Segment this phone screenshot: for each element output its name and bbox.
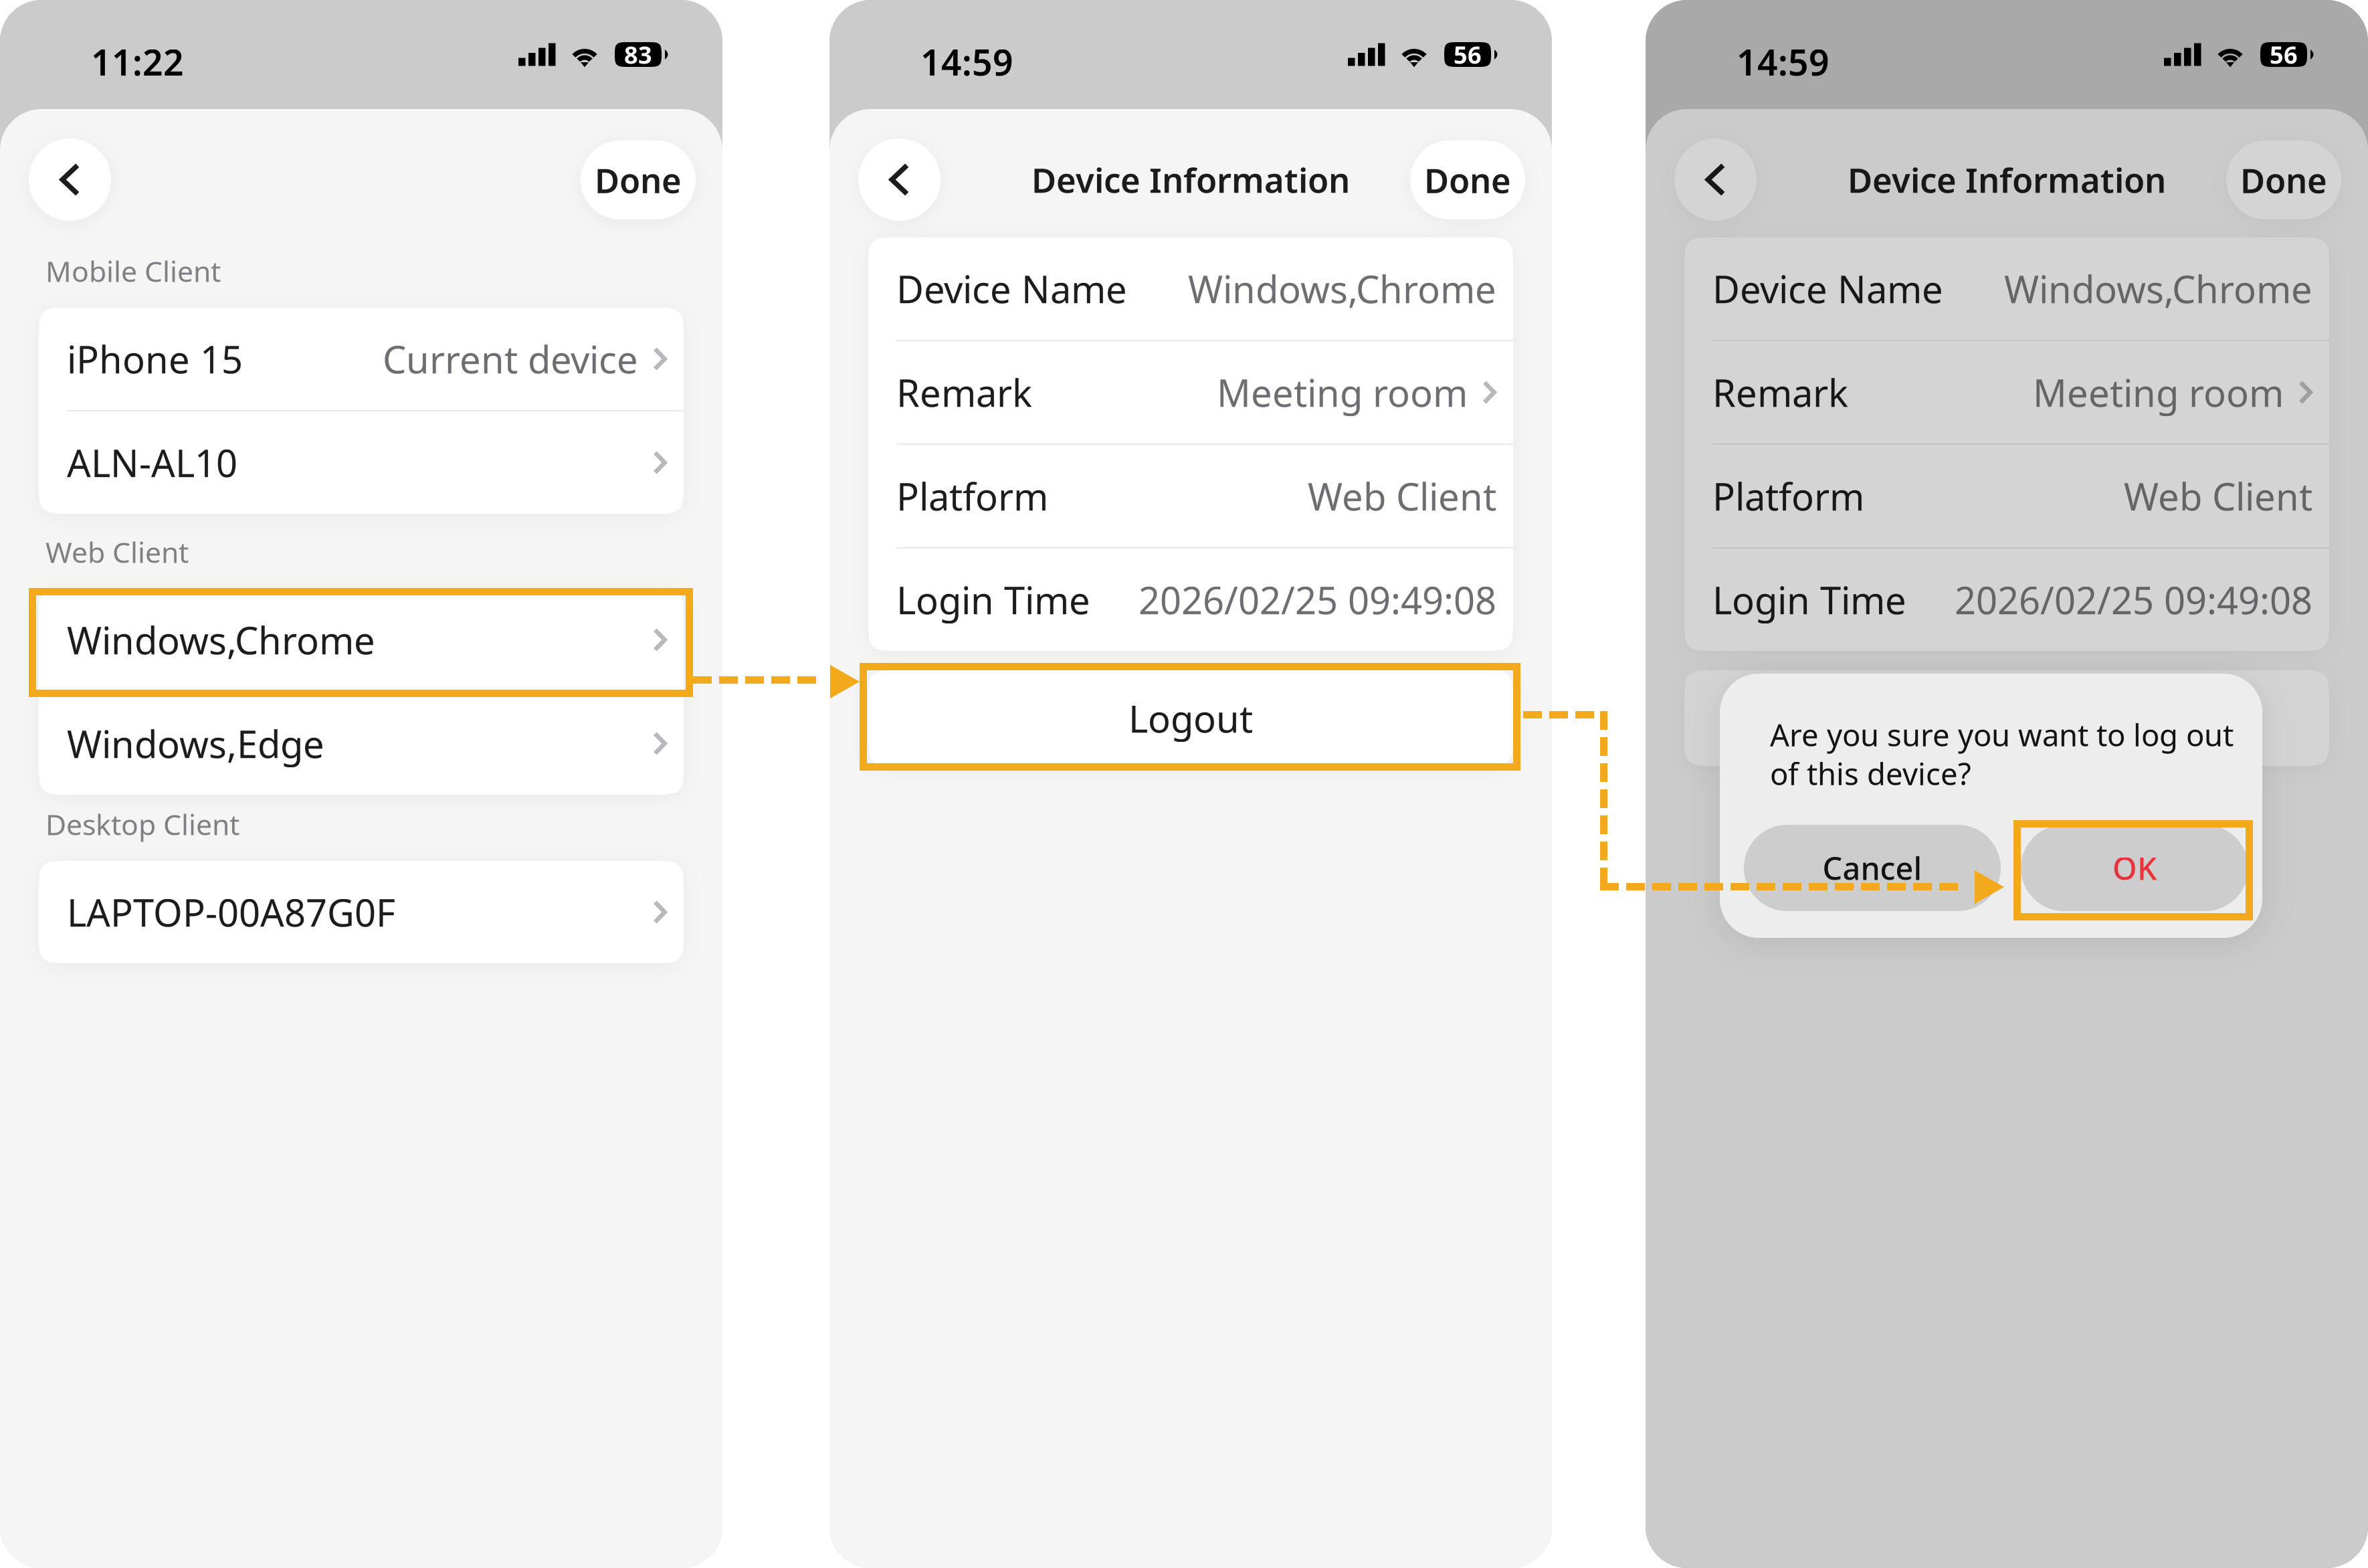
staticText: Platform xyxy=(896,471,1048,521)
staticText: LAPTOP-00A87G0F xyxy=(67,887,395,937)
button[interactable]: Device Name xyxy=(868,237,1513,340)
staticText: Logout xyxy=(1945,693,2069,743)
staticText: 11:22 xyxy=(91,38,184,85)
staticText: Web Client xyxy=(45,533,189,571)
staticText: of this device? xyxy=(1770,753,1971,793)
staticText: 2026/02/25 09:49:08 xyxy=(1139,575,1496,625)
staticText: Remark xyxy=(1712,367,1848,417)
button[interactable]: iPhone 15 xyxy=(39,308,684,410)
staticText: 14:59 xyxy=(920,38,1013,85)
staticText: Platform xyxy=(1712,471,1864,521)
staticText: Web Client xyxy=(1308,471,1496,521)
staticText: Login Time xyxy=(1712,575,1906,625)
button[interactable]: Windows,Chrome xyxy=(39,589,684,691)
button[interactable]: Device Name xyxy=(1684,237,2329,340)
button[interactable]: LAPTOP-00A87G0F xyxy=(39,861,684,963)
staticText: Current device xyxy=(383,334,638,384)
staticText: Meeting room xyxy=(1217,367,1468,417)
button[interactable]: Back xyxy=(1674,138,1757,221)
staticText: iPhone 15 xyxy=(67,334,243,384)
button[interactable]: Platform xyxy=(868,445,1513,547)
staticText: Logout xyxy=(1128,693,1253,743)
button[interactable]: ALN-AL10 xyxy=(39,411,684,514)
staticText: Device Information xyxy=(1031,157,1350,202)
button[interactable]: Platform xyxy=(1684,445,2329,547)
staticText: Done xyxy=(595,157,682,202)
staticText: Device Information xyxy=(1848,157,2166,202)
staticText: Mobile Client xyxy=(45,252,221,290)
staticText: Remark xyxy=(896,367,1032,417)
button[interactable]: Back xyxy=(29,138,111,221)
staticText: 56 xyxy=(2270,39,2298,71)
button[interactable]: Back xyxy=(858,138,941,221)
staticText: ALN-AL10 xyxy=(67,438,237,487)
staticText: Done xyxy=(2240,157,2327,202)
button[interactable]: Done xyxy=(2226,140,2341,219)
button[interactable]: Remark xyxy=(1684,341,2329,444)
button[interactable]: Done xyxy=(1410,140,1525,219)
staticText: Windows,Chrome xyxy=(67,615,375,665)
staticText: Login Time xyxy=(896,575,1090,625)
staticText: OK xyxy=(2112,847,2157,889)
staticText: Windows,Chrome xyxy=(2004,264,2312,314)
staticText: 56 xyxy=(1454,39,1482,71)
button[interactable]: Logout xyxy=(868,670,1513,766)
staticText: 83 xyxy=(624,39,652,71)
staticText: Device Name xyxy=(1712,264,1943,314)
staticText: Done xyxy=(1424,157,1511,202)
staticText: Windows,Chrome xyxy=(1188,264,1496,314)
staticText: 2026/02/25 09:49:08 xyxy=(1955,575,2312,625)
button[interactable]: Login Time xyxy=(1684,549,2329,651)
staticText: Desktop Client xyxy=(45,805,239,843)
staticText: Cancel xyxy=(1822,847,1922,889)
button[interactable]: Done xyxy=(581,140,696,219)
button[interactable]: OK xyxy=(2021,825,2248,911)
button[interactable]: Cancel xyxy=(1744,825,2001,911)
staticText: Are you sure you want to log out xyxy=(1770,714,2234,755)
button[interactable]: Logout xyxy=(1684,670,2329,766)
staticText: Windows,Edge xyxy=(67,719,324,768)
staticText: Device Name xyxy=(896,264,1127,314)
button[interactable]: Windows,Edge xyxy=(39,692,684,795)
staticText: Web Client xyxy=(2124,471,2312,521)
staticText: Meeting room xyxy=(2033,367,2284,417)
staticText: 14:59 xyxy=(1737,38,1830,85)
button[interactable]: Login Time xyxy=(868,549,1513,651)
button[interactable]: Remark xyxy=(868,341,1513,444)
